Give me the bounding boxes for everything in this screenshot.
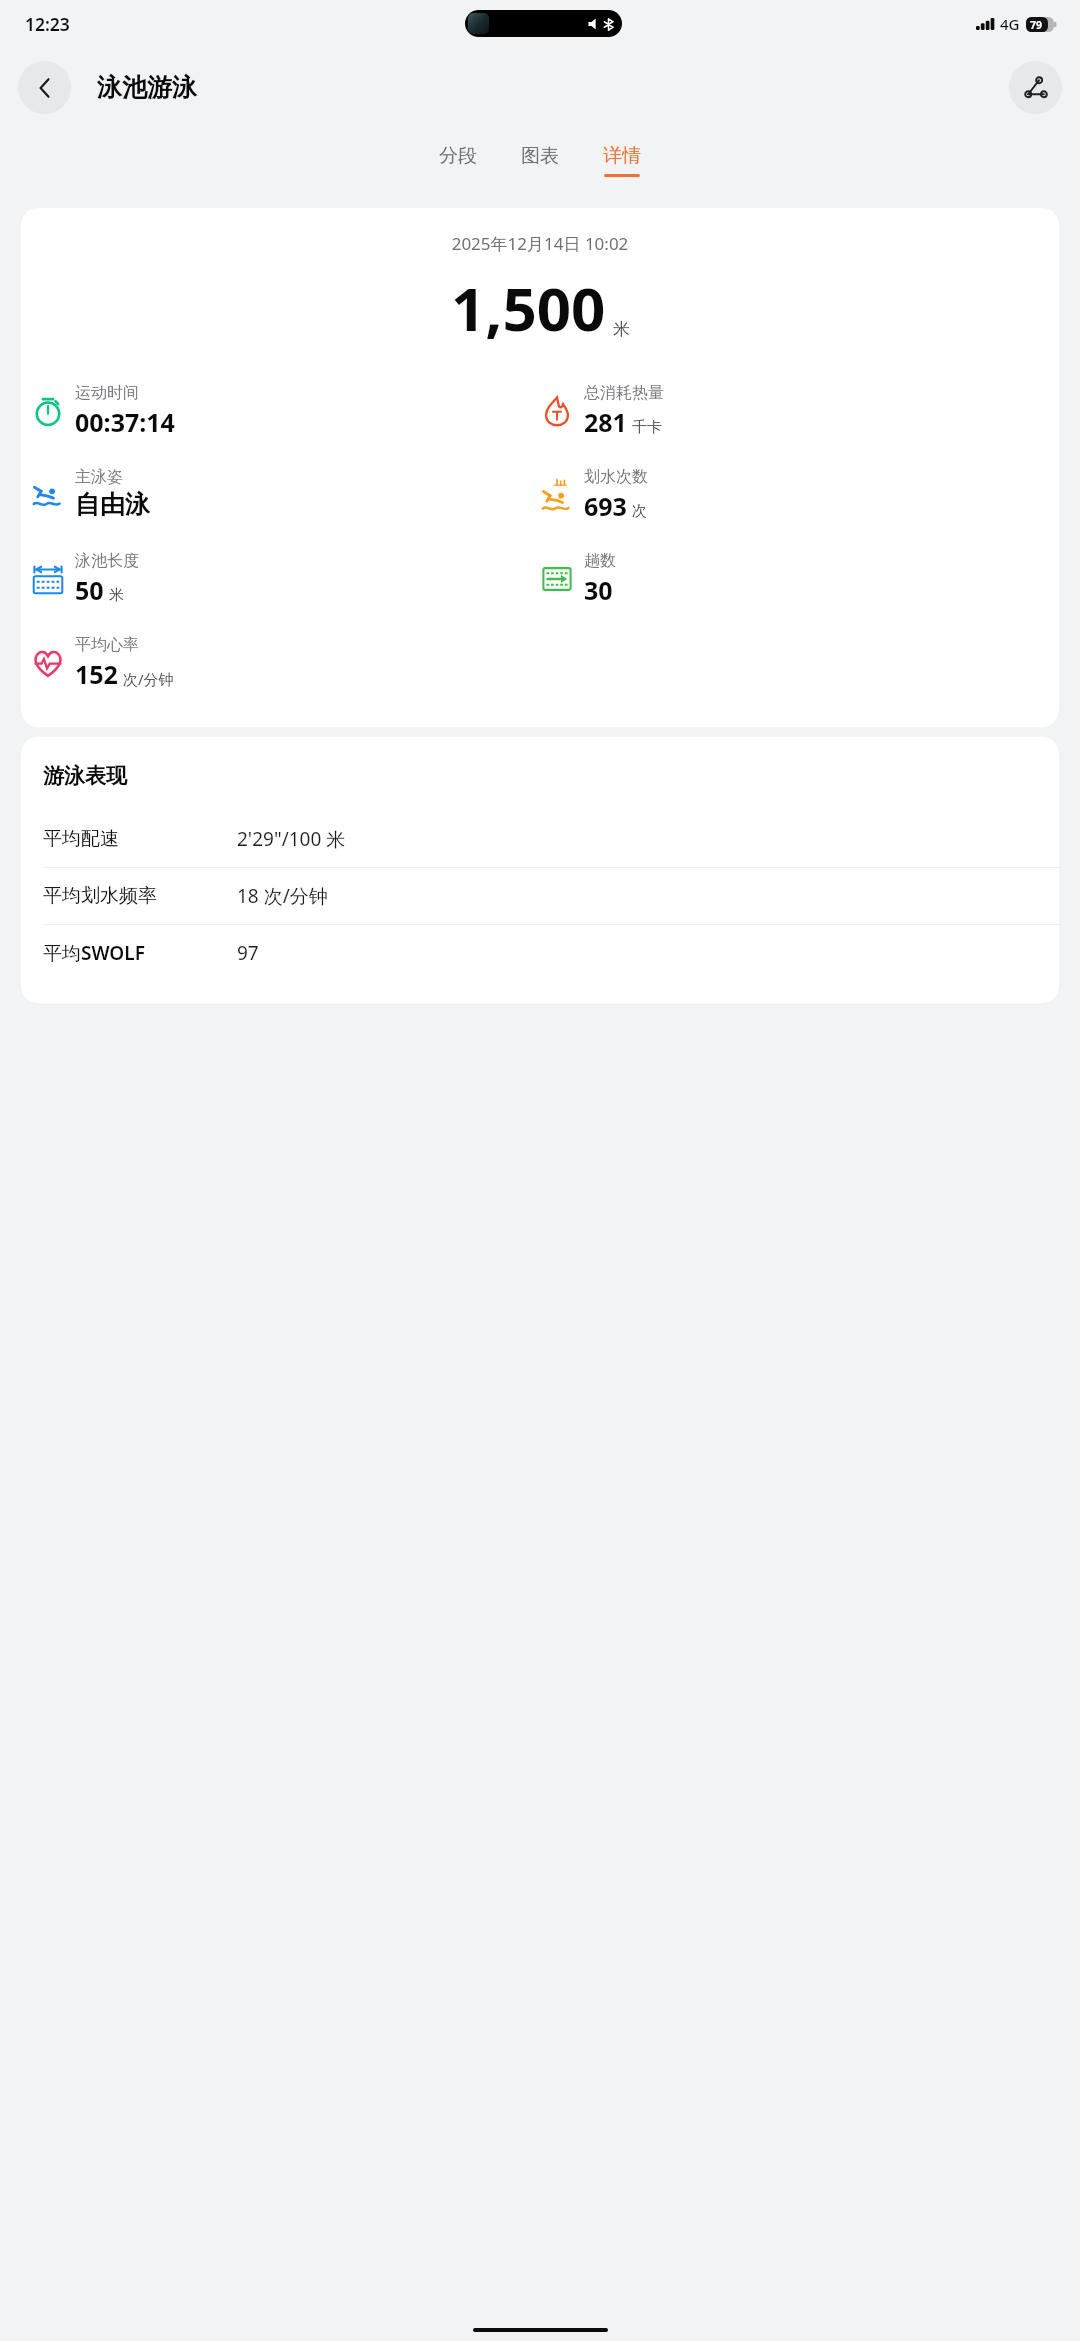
- staticText: 平均心率: [75, 635, 139, 655]
- button[interactable]: 总消耗热量: [540, 381, 664, 441]
- staticText: 2'29"/100 米: [237, 826, 346, 852]
- button[interactable]: 平均配速: [21, 811, 1059, 867]
- button[interactable]: 分段: [431, 140, 485, 181]
- staticText: 总消耗热量: [584, 383, 664, 403]
- staticText: 693: [584, 489, 627, 523]
- staticText: 主泳姿: [75, 467, 123, 487]
- button[interactable]: 详情: [595, 140, 649, 181]
- staticText: 图表: [521, 144, 559, 168]
- staticText: 281: [584, 405, 627, 439]
- button[interactable]: 图表: [513, 140, 567, 181]
- staticText: 1,500: [451, 267, 606, 349]
- button[interactable]: 平均SWOLF: [21, 925, 1059, 981]
- button[interactable]: 平均划水频率: [21, 868, 1059, 924]
- staticText: 79: [1030, 18, 1043, 32]
- staticText: 97: [237, 940, 259, 966]
- staticText: 次/分钟: [123, 669, 174, 689]
- button[interactable]: 划水次数: [540, 465, 648, 525]
- button[interactable]: 平均心率: [31, 633, 174, 693]
- staticText: 152: [75, 657, 118, 691]
- staticText: 米: [109, 586, 124, 605]
- staticText: 泳池游泳: [97, 72, 197, 103]
- staticText: 平均SWOLF: [43, 940, 237, 966]
- staticText: 米: [613, 319, 630, 340]
- staticText: 平均划水频率: [43, 884, 237, 908]
- staticText: 50: [75, 573, 104, 607]
- staticText: 游泳表现: [43, 763, 127, 789]
- staticText: 泳池长度: [75, 551, 139, 571]
- staticText: 分段: [439, 144, 477, 168]
- staticText: 详情: [603, 144, 641, 168]
- staticText: 趟数: [584, 551, 616, 571]
- staticText: 00:37:14: [75, 405, 175, 439]
- staticText: 划水次数: [584, 467, 648, 487]
- button[interactable]: 分享: [1009, 61, 1062, 114]
- staticText: 18 次/分钟: [237, 883, 328, 909]
- button[interactable]: 返回: [18, 61, 71, 114]
- button[interactable]: 主泳姿: [31, 465, 150, 522]
- staticText: 12:23: [25, 12, 70, 36]
- button[interactable]: 趟数: [540, 549, 616, 609]
- staticText: 4G: [1000, 14, 1020, 34]
- button[interactable]: 运动时间: [31, 381, 175, 441]
- staticText: 运动时间: [75, 383, 139, 403]
- staticText: 次: [632, 502, 647, 521]
- staticText: 平均配速: [43, 827, 237, 851]
- staticText: 千卡: [632, 418, 662, 437]
- staticText: 30: [584, 573, 613, 607]
- staticText: 自由泳: [75, 489, 150, 520]
- staticText: 2025年12月14日 10:02: [21, 232, 1059, 255]
- button[interactable]: 泳池长度: [31, 549, 139, 609]
